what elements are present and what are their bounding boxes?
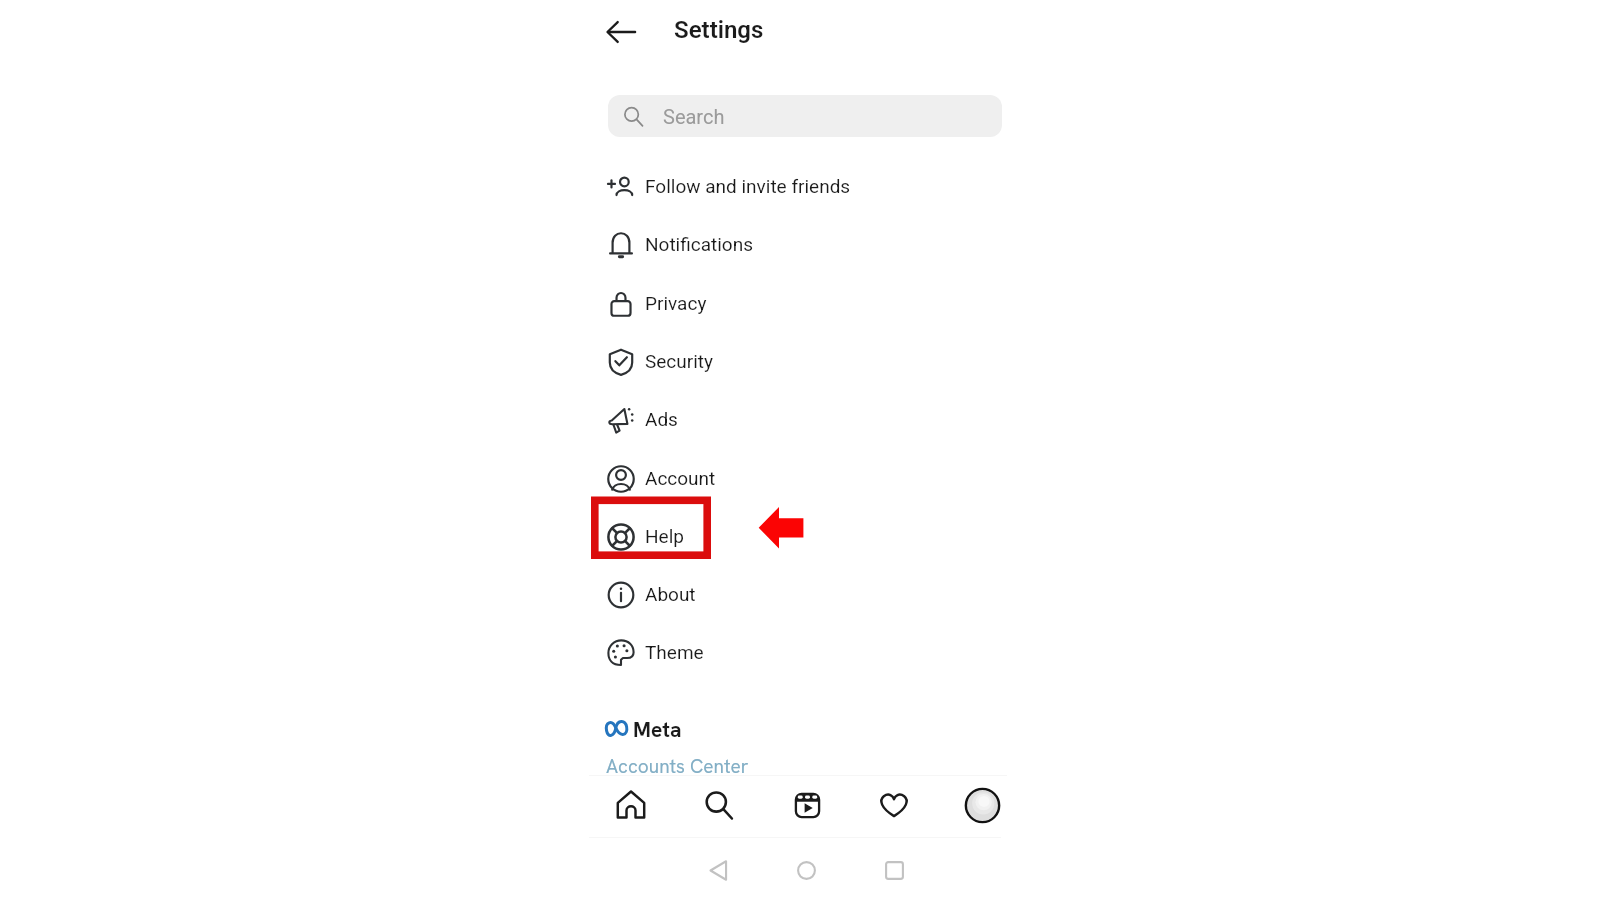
button[interactable]: Home — [608, 782, 654, 828]
button[interactable]: Follow and invite friends — [600, 163, 900, 209]
staticText: Ads — [645, 408, 678, 430]
button[interactable]: Notifications — [600, 221, 900, 267]
button[interactable]: Accounts Center — [606, 754, 749, 779]
staticText: Search — [663, 105, 725, 128]
button[interactable]: Help — [600, 513, 900, 559]
button[interactable]: Activity — [871, 782, 917, 828]
staticText: Settings — [674, 16, 764, 44]
staticText: Notifications — [645, 233, 754, 255]
button[interactable]: Account — [600, 455, 900, 501]
staticText: Security — [645, 350, 714, 372]
staticText: Theme — [645, 641, 704, 663]
staticText: Follow and invite friends — [645, 175, 851, 197]
staticText: Account — [645, 467, 716, 489]
button[interactable]: Search — [608, 95, 1002, 137]
button[interactable]: Recents — [873, 849, 915, 891]
button[interactable]: Profile — [959, 782, 1005, 828]
button[interactable]: Meta — [605, 716, 682, 740]
staticText: Privacy — [645, 292, 707, 314]
button[interactable]: Security — [600, 338, 900, 384]
button[interactable]: Reels — [784, 782, 830, 828]
staticText: Meta — [633, 716, 682, 740]
button[interactable]: Privacy — [600, 280, 900, 326]
button[interactable]: Theme — [600, 629, 900, 675]
button[interactable]: Settings — [674, 16, 764, 44]
staticText: Help — [645, 525, 684, 547]
button[interactable]: Home — [785, 849, 827, 891]
button[interactable]: Back — [596, 7, 645, 56]
button[interactable]: Ads — [600, 396, 900, 442]
button[interactable]: Search — [696, 782, 742, 828]
staticText: About — [645, 583, 696, 605]
staticText: Accounts Center — [606, 754, 749, 779]
button[interactable]: Back — [697, 849, 739, 891]
button[interactable]: About — [600, 571, 900, 617]
